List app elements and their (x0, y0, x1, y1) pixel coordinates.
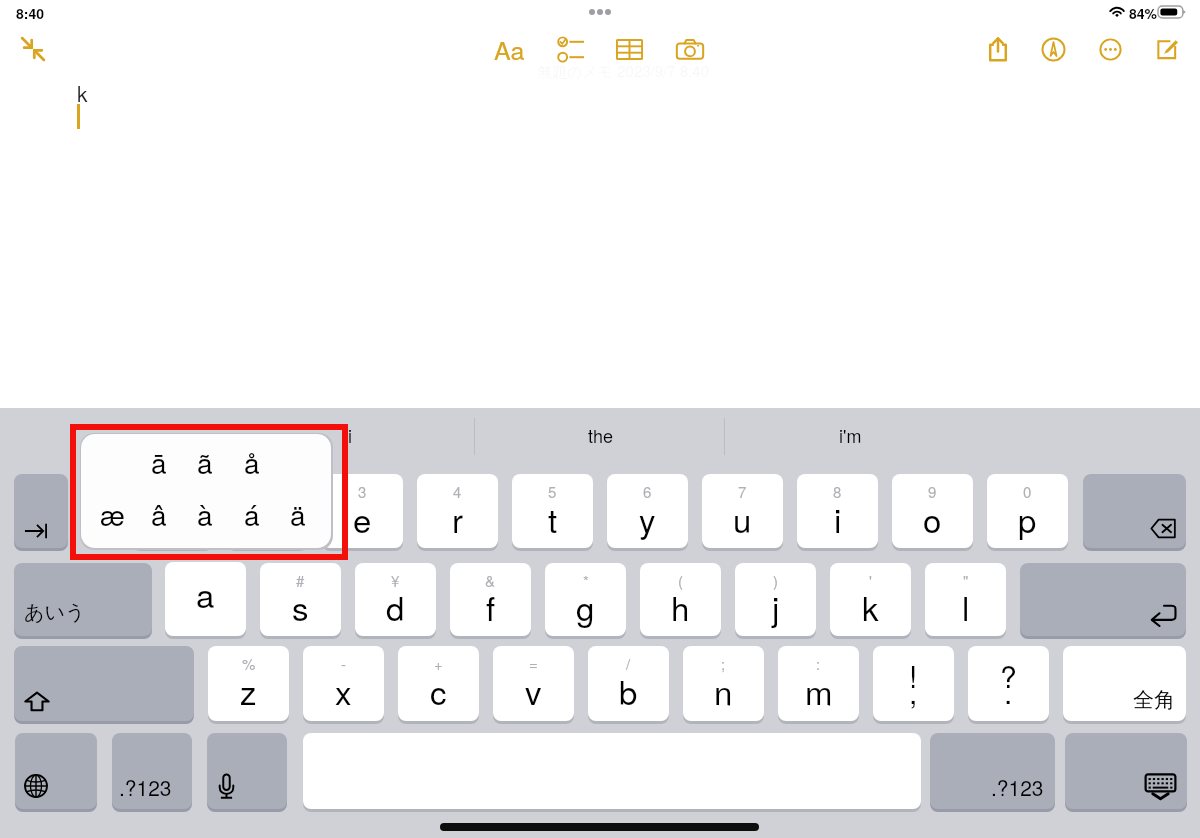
button[interactable]: ; (683, 646, 764, 721)
staticText: ; (721, 653, 726, 674)
staticText: 8 (833, 481, 842, 502)
button[interactable]: 0 (987, 474, 1068, 548)
staticText: y (639, 495, 656, 542)
staticText: x (335, 667, 352, 714)
button[interactable]: " (925, 563, 1006, 636)
staticText: z (240, 667, 257, 714)
button[interactable]: 6 (607, 474, 688, 548)
staticText: d (386, 583, 405, 630)
button[interactable]: Dictate (207, 733, 287, 809)
staticText: 全角 (1133, 687, 1175, 713)
button[interactable]: á (229, 490, 275, 538)
staticText: 8:40 (16, 3, 45, 23)
button[interactable]: 9 (892, 474, 973, 548)
button[interactable]: Next keyboard (15, 733, 97, 809)
button[interactable]: Hide keyboard (1065, 733, 1187, 809)
button[interactable]: ? (968, 646, 1049, 721)
button[interactable]: = (493, 646, 574, 721)
button[interactable]: 7 (702, 474, 783, 548)
staticText: i'm (839, 422, 862, 448)
button[interactable]: / (588, 646, 669, 721)
staticText: i (834, 495, 842, 542)
button[interactable]: à (182, 490, 228, 538)
button[interactable]: Checklist (548, 27, 592, 71)
button[interactable]: .?123 (930, 733, 1055, 809)
button[interactable]: Collapse (11, 27, 55, 71)
staticText: e (353, 495, 372, 542)
button[interactable]: ã (182, 438, 228, 486)
staticText: * (583, 570, 589, 591)
button[interactable]: Table (607, 27, 651, 71)
staticText: b (619, 667, 638, 714)
button[interactable]: + (398, 646, 479, 721)
button[interactable]: ) (735, 563, 816, 636)
staticText: r (452, 495, 463, 542)
button[interactable]: Shift (14, 646, 194, 721)
staticText: f (486, 583, 496, 630)
button[interactable]: the (475, 408, 725, 462)
staticText: á (244, 494, 260, 534)
button[interactable]: ä (275, 490, 321, 538)
staticText: " (963, 570, 969, 591)
button[interactable]: i (225, 408, 475, 462)
staticText: Aa (494, 31, 525, 67)
button[interactable]: % (208, 646, 289, 721)
button[interactable]: ā (136, 438, 182, 486)
staticText: â (151, 494, 167, 534)
button[interactable]: # (260, 563, 341, 636)
staticText: 6 (643, 481, 652, 502)
button[interactable]: 8 (797, 474, 878, 548)
button[interactable]: & (450, 563, 531, 636)
button[interactable]: Backspace (1083, 474, 1186, 548)
button[interactable]: - (303, 646, 384, 721)
staticText: % (242, 653, 256, 674)
staticText: m (805, 667, 833, 714)
button[interactable]: Markup (1031, 27, 1075, 71)
button[interactable]: 全角 (1063, 646, 1186, 721)
button[interactable]: 4 (417, 474, 498, 548)
staticText: s (292, 583, 309, 630)
button[interactable]: ! (873, 646, 954, 721)
staticText: あいう (24, 600, 86, 625)
staticText: 84% (1129, 3, 1158, 23)
button[interactable]: Text format (487, 27, 531, 71)
button[interactable]: Return (1020, 563, 1186, 636)
button[interactable]: .?123 (112, 733, 192, 809)
staticText: 9 (928, 481, 937, 502)
button[interactable]: Tab (14, 474, 68, 548)
staticText: i (348, 422, 352, 448)
button[interactable]: 2 (227, 474, 308, 548)
staticText: & (485, 570, 496, 591)
button[interactable]: 3 (322, 474, 403, 548)
staticText: j (772, 583, 780, 630)
button[interactable]: ( (640, 563, 721, 636)
staticText: . (1004, 670, 1013, 713)
staticText: / (626, 653, 631, 674)
button[interactable]: ¥ (355, 563, 436, 636)
staticText: n (714, 667, 733, 714)
button[interactable]: ' (830, 563, 911, 636)
button[interactable]: * (545, 563, 626, 636)
staticText: ( (678, 570, 683, 591)
button[interactable]: å (229, 438, 275, 486)
staticText: æ (100, 494, 125, 534)
button[interactable]: New note (1145, 27, 1189, 71)
staticText: 5 (548, 481, 557, 502)
button[interactable]: 5 (512, 474, 593, 548)
button[interactable]: æ (89, 490, 135, 538)
button[interactable]: More (1088, 27, 1132, 71)
button[interactable]: i'm (725, 408, 975, 462)
staticText: ? (1000, 654, 1017, 697)
button[interactable]: : (778, 646, 859, 721)
staticText: k (77, 78, 88, 108)
button[interactable]: 1 (132, 474, 213, 548)
staticText: o (923, 495, 942, 542)
staticText: = (529, 653, 538, 674)
button[interactable]: Share (976, 27, 1020, 71)
button[interactable]: Camera (668, 27, 712, 71)
button[interactable]: あいう (14, 563, 152, 636)
button[interactable]: â (136, 490, 182, 538)
button[interactable]: a (165, 562, 246, 636)
